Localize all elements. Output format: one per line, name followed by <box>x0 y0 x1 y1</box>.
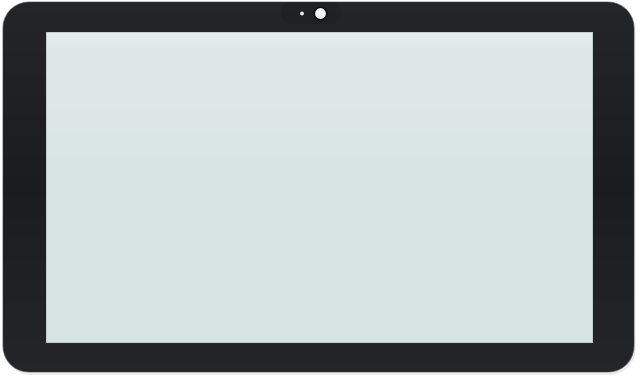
button[interactable]: Tablet device preview <box>0 0 640 377</box>
